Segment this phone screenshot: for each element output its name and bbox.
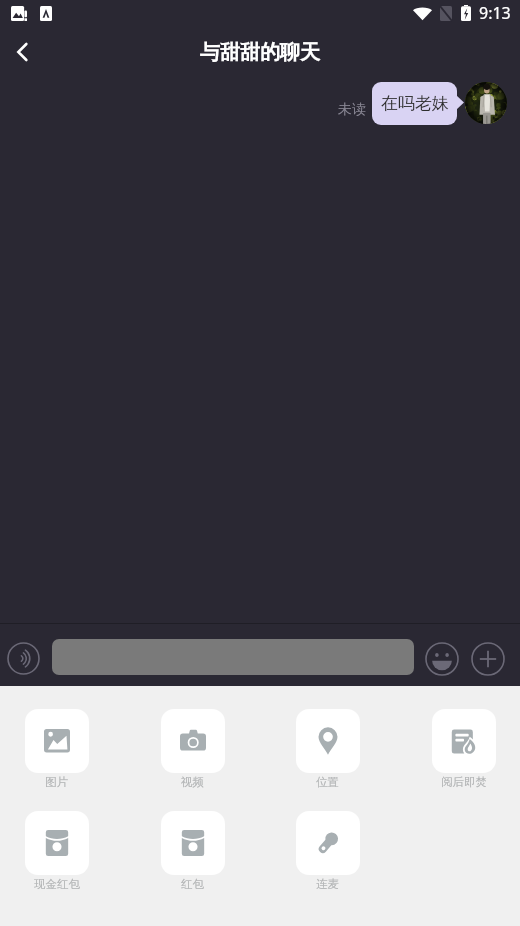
staticText: 图片 <box>45 775 68 789</box>
button[interactable]: Emoji <box>425 642 459 676</box>
staticText: 位置 <box>316 775 339 789</box>
button[interactable]: 图片 <box>24 709 89 789</box>
button[interactable]: 连麦 <box>295 811 360 891</box>
button[interactable]: 视频 <box>160 709 225 789</box>
staticText: 红包 <box>181 877 204 891</box>
staticText: 连麦 <box>316 877 339 891</box>
staticText: 未读 <box>338 101 366 119</box>
button[interactable]: 在吗老妹 <box>372 82 457 125</box>
button[interactable]: 阅后即焚 <box>431 709 496 789</box>
staticText: 现金红包 <box>34 877 80 891</box>
staticText: 9:13 <box>479 2 511 24</box>
button[interactable]: 红包 <box>160 811 225 891</box>
button[interactable]: 现金红包 <box>24 811 89 891</box>
button[interactable]: 位置 <box>295 709 360 789</box>
button[interactable]: Voice input <box>7 642 40 675</box>
button[interactable]: Avatar <box>465 82 507 124</box>
button[interactable]: Back <box>0 30 44 74</box>
staticText: 与甜甜的聊天 <box>200 40 320 65</box>
staticText: 视频 <box>181 775 204 789</box>
staticText: 在吗老妹 <box>381 93 449 114</box>
staticText: 阅后即焚 <box>441 775 487 789</box>
button[interactable] <box>52 639 414 675</box>
button[interactable]: More options <box>471 642 505 676</box>
